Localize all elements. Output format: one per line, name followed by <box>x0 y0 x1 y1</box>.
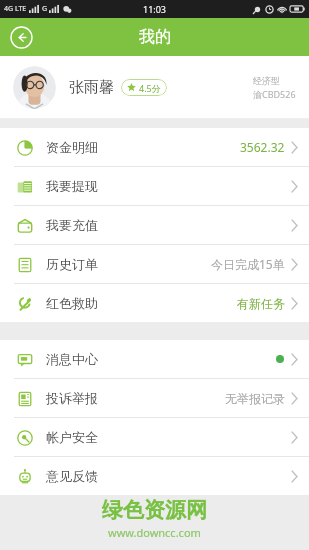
staticText: 今日完成15单 <box>211 256 285 272</box>
staticText: www.downcc.com <box>108 525 201 540</box>
staticText: 有新任务 <box>237 296 285 311</box>
button[interactable]: 张雨馨 <box>0 56 309 118</box>
button[interactable]: 我要提现 <box>0 167 309 205</box>
button[interactable]: 投诉举报 <box>0 379 309 417</box>
staticText: 帐户安全 <box>46 429 98 445</box>
button[interactable]: 意见反馈 <box>0 457 309 495</box>
staticText: 我要充值 <box>46 217 98 233</box>
staticText: 绿色资源网 <box>102 497 207 523</box>
button[interactable]: 资金明细 <box>0 128 309 166</box>
staticText: 资金明细 <box>46 139 98 155</box>
staticText: 无举报记录 <box>225 391 285 406</box>
staticText: 渝CBD526 <box>253 88 296 100</box>
staticText: 意见反馈 <box>46 468 98 484</box>
button[interactable]: Back <box>8 24 34 50</box>
button[interactable]: 消息中心 <box>0 340 309 378</box>
button[interactable]: 我要充值 <box>0 206 309 244</box>
button[interactable]: 帐户安全 <box>0 418 309 456</box>
staticText: 红色救助 <box>46 295 98 311</box>
staticText: 4.5分 <box>139 82 161 94</box>
staticText: 消息中心 <box>46 351 98 367</box>
staticText: 11:03 <box>143 3 167 15</box>
staticText: 3562.32 <box>240 139 285 155</box>
staticText: 我要提现 <box>46 178 98 194</box>
staticText: 历史订单 <box>46 256 98 272</box>
staticText: 经济型 <box>253 75 280 86</box>
button[interactable]: 4.5分 <box>121 79 167 96</box>
staticText: 我的 <box>139 27 171 47</box>
staticText: 4G LTE <box>4 4 27 14</box>
button[interactable]: 红色救助 <box>0 284 309 322</box>
staticText: 张雨馨 <box>69 78 114 97</box>
button[interactable]: 历史订单 <box>0 245 309 283</box>
staticText: 投诉举报 <box>46 390 98 406</box>
staticText: G <box>42 4 48 14</box>
